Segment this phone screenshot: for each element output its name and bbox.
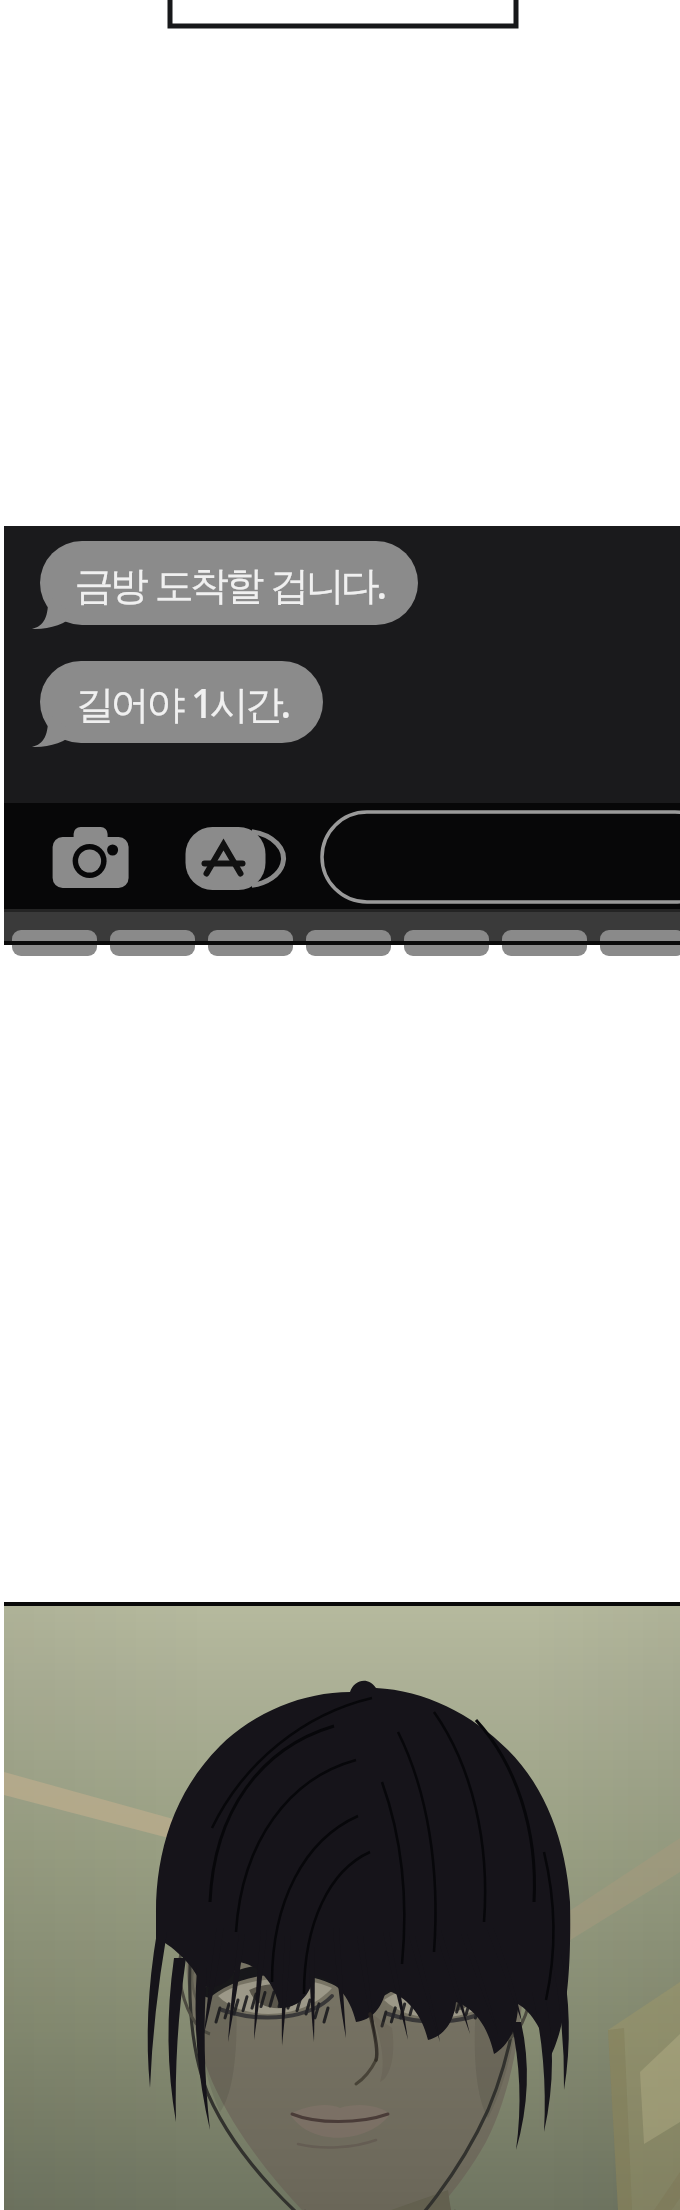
button[interactable] xyxy=(4,1602,680,2210)
button[interactable]: 금방 도착할 겁니다. xyxy=(4,526,680,945)
staticText: 금방 도착할 겁니다. xyxy=(74,557,384,610)
staticText: 길어야 1시간. xyxy=(75,676,288,729)
